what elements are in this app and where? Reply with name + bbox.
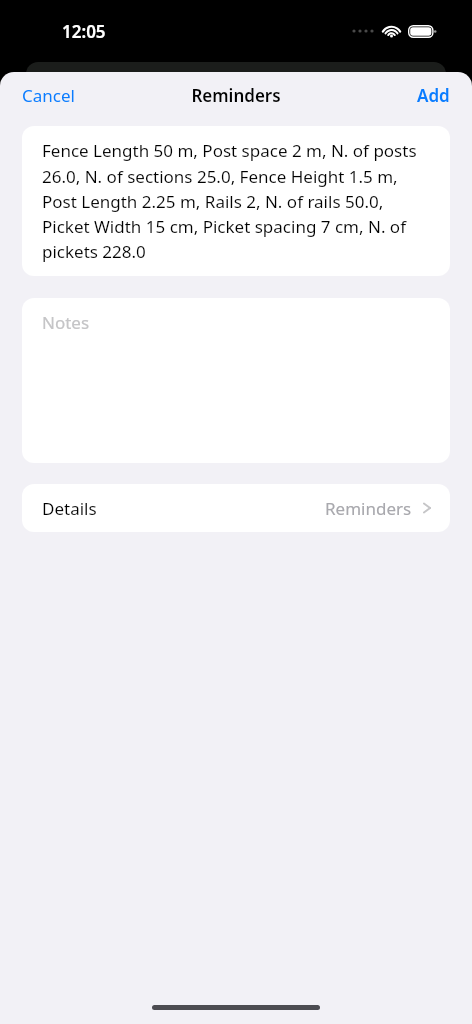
staticText: Cancel	[22, 84, 75, 107]
staticText: Details	[42, 497, 97, 520]
staticText: 12:05	[62, 20, 106, 43]
staticText: Reminders	[191, 84, 281, 107]
button[interactable]: Fence Length 50 m, Post space 2 m, N. of…	[22, 126, 450, 276]
staticText: Add	[417, 84, 450, 107]
staticText: Notes	[42, 311, 90, 334]
other: Open details	[420, 501, 434, 515]
button[interactable]: Cancel	[10, 78, 87, 113]
staticText: Reminders	[325, 497, 412, 520]
staticText: Fence Length 50 m, Post space 2 m, N. of…	[42, 139, 430, 263]
button[interactable]: Add	[405, 78, 462, 113]
button[interactable]: Details	[22, 484, 450, 532]
